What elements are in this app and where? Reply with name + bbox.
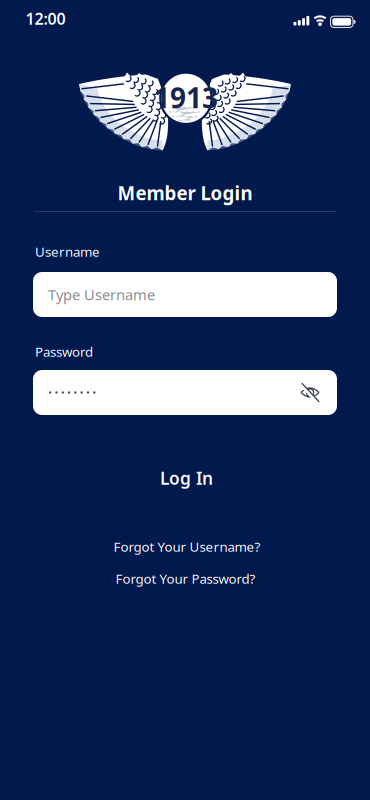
staticText: 12:00 bbox=[25, 8, 65, 29]
staticText: Type Username bbox=[48, 285, 155, 304]
staticText: 1913 bbox=[154, 78, 218, 116]
button[interactable]: Type Username bbox=[33, 272, 337, 317]
button[interactable]: Password bbox=[33, 370, 337, 415]
staticText: Forgot Your Password? bbox=[115, 570, 255, 587]
staticText: Password bbox=[35, 343, 93, 360]
staticText: Forgot Your Username? bbox=[113, 538, 260, 555]
staticText: Username bbox=[35, 243, 100, 260]
button[interactable]: Show Password bbox=[299, 381, 321, 403]
staticText: Log In bbox=[160, 466, 213, 489]
button[interactable]: Log In bbox=[160, 466, 213, 489]
staticText: Member Login bbox=[117, 181, 252, 205]
button[interactable]: Forgot Your Password? bbox=[115, 570, 255, 587]
button[interactable]: Forgot Your Username? bbox=[113, 538, 260, 555]
